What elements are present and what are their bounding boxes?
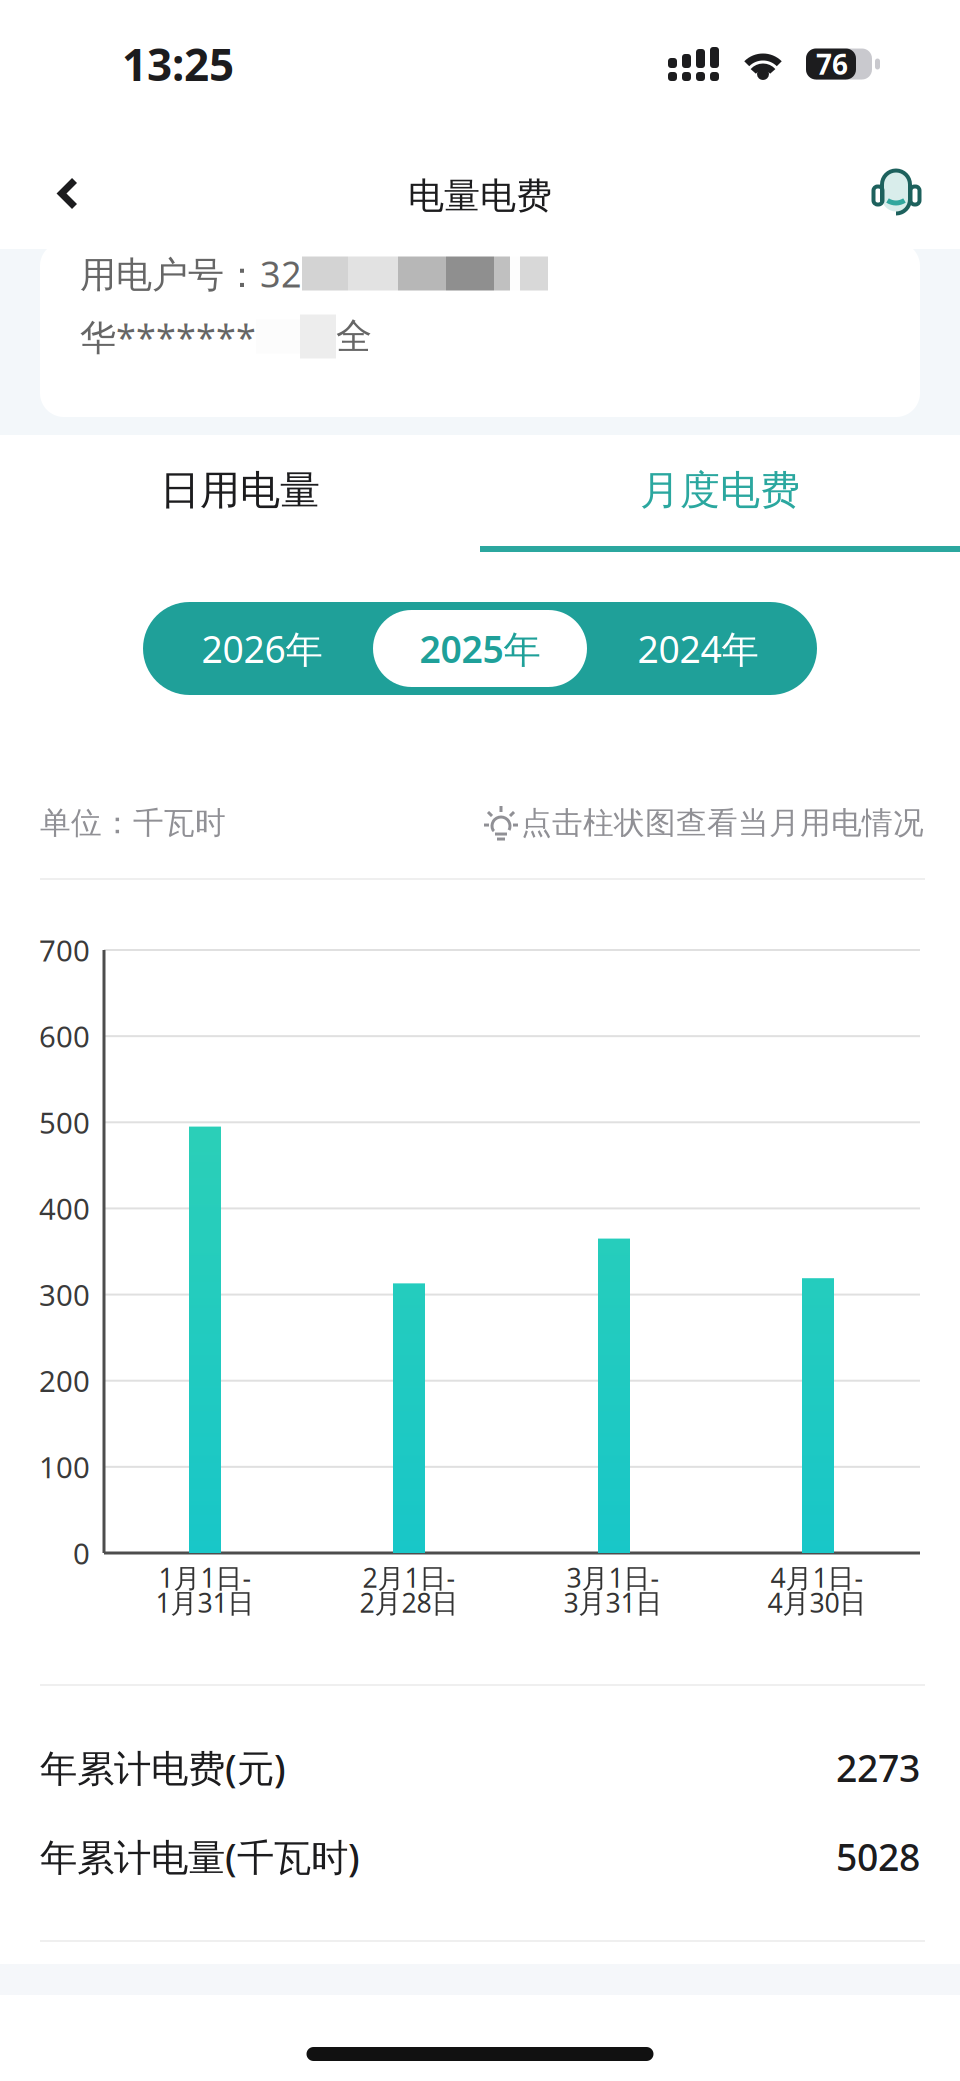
staticText: 年累计电费(元) (40, 1743, 286, 1792)
staticText: 300 (39, 1275, 90, 1314)
staticText: 76 (816, 45, 848, 83)
staticText: 2273 (836, 1743, 920, 1792)
button[interactable]: 月度电费 (480, 435, 960, 552)
staticText: 100 (39, 1447, 90, 1486)
staticText: 2025年 (419, 624, 540, 673)
staticText: 3月1日- (566, 1560, 659, 1595)
button[interactable]: 2026年 (151, 602, 373, 695)
staticText: 华******* (80, 313, 256, 360)
staticText: 电量电费 (408, 174, 552, 218)
staticText: 2024年 (637, 624, 758, 673)
staticText: 2026年 (201, 624, 322, 673)
staticText: 500 (39, 1103, 90, 1142)
staticText: 1月1日- (158, 1560, 251, 1595)
staticText: 全 (336, 314, 372, 359)
staticText: 13:25 (122, 35, 234, 93)
button[interactable]: 2024年 (587, 602, 809, 695)
staticText: 4月30日 (767, 1585, 866, 1620)
button[interactable]: 在线客服 (848, 138, 944, 238)
staticText: 4月1日- (770, 1560, 863, 1595)
button[interactable]: 日用电量 (0, 435, 480, 552)
staticText: 2月1日- (362, 1560, 455, 1595)
button[interactable]: 返回 (20, 138, 116, 238)
staticText: 0 (73, 1533, 90, 1572)
staticText: 用电户号：32 (80, 250, 302, 297)
staticText: 200 (39, 1361, 90, 1400)
button[interactable]: 2025年 (373, 610, 587, 687)
staticText: 1月31日 (155, 1585, 254, 1620)
staticText: 400 (39, 1189, 90, 1228)
staticText: 年累计电量(千瓦时) (40, 1832, 360, 1881)
staticText: 600 (39, 1017, 90, 1056)
staticText: 2月28日 (359, 1585, 458, 1620)
staticText: 日用电量 (160, 466, 320, 515)
staticText: 点击柱状图查看当月用电情况 (521, 804, 924, 842)
staticText: 3月31日 (563, 1585, 662, 1620)
staticText: 月度电费 (640, 466, 800, 515)
staticText: 5028 (836, 1832, 920, 1881)
staticText: 700 (39, 930, 90, 969)
staticText: 单位：千瓦时 (40, 804, 226, 842)
